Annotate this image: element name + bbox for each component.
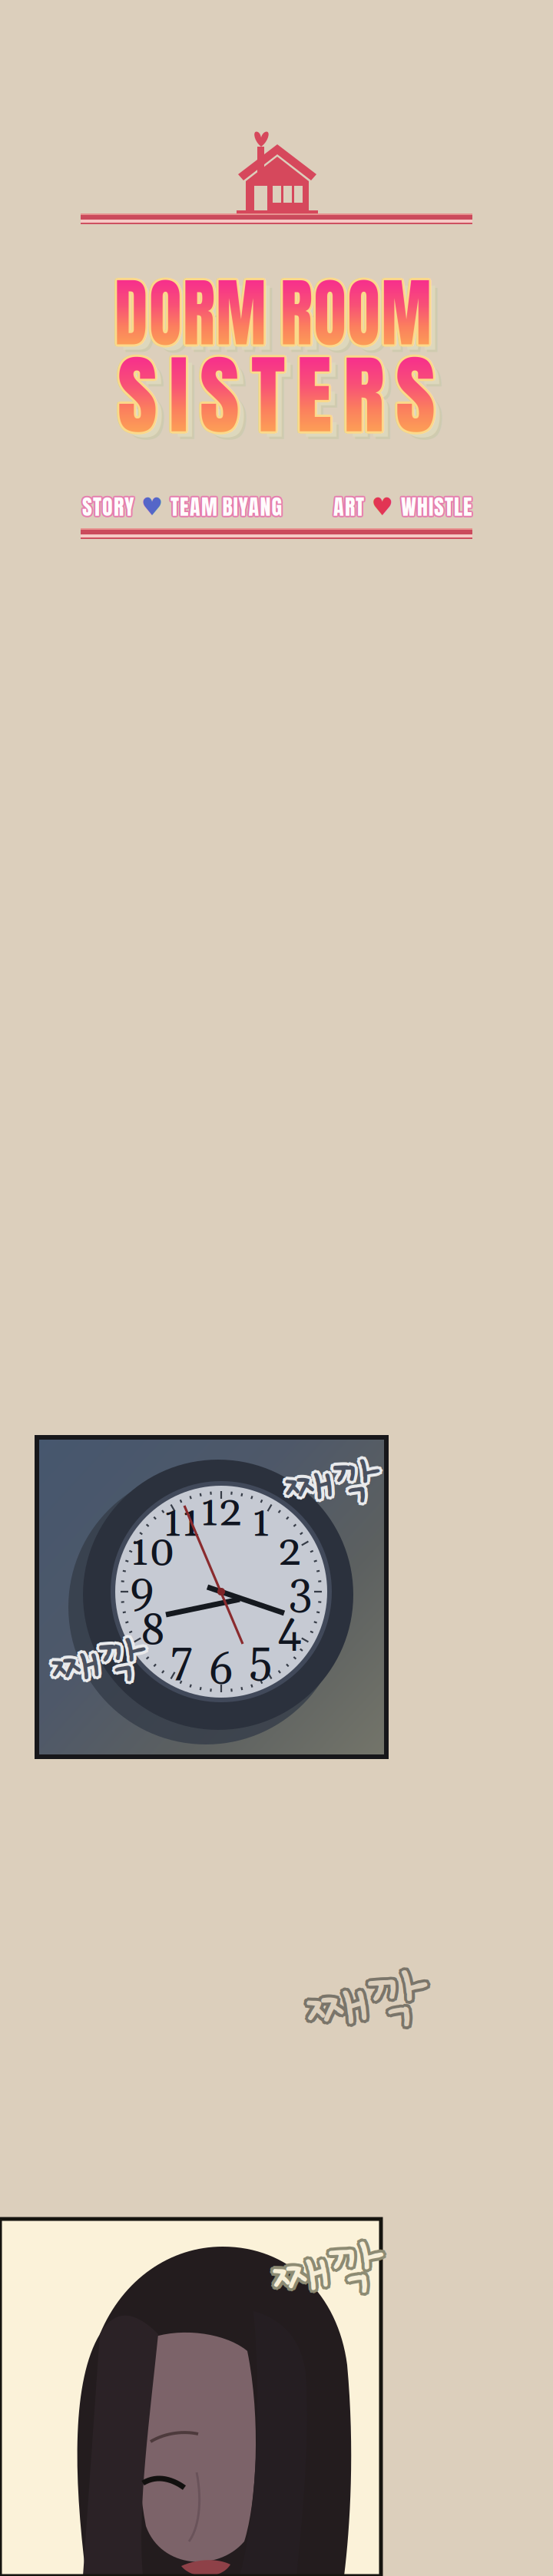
staticText: I xyxy=(234,492,239,524)
staticText: R xyxy=(345,491,355,523)
staticText: M xyxy=(230,256,286,369)
staticText: N xyxy=(261,492,272,524)
staticText: T xyxy=(253,332,287,461)
staticText: O xyxy=(372,255,408,367)
staticText: T xyxy=(446,491,455,523)
staticText: O xyxy=(379,262,416,374)
staticText: O xyxy=(103,489,114,522)
staticText: B xyxy=(222,492,232,524)
staticText: S xyxy=(198,328,238,458)
staticText: T xyxy=(251,332,285,462)
staticText: R xyxy=(193,256,228,369)
staticText: M xyxy=(202,492,219,524)
staticText: A xyxy=(247,491,258,523)
staticText: D xyxy=(113,255,150,367)
staticText: S xyxy=(435,492,445,524)
staticText: T xyxy=(354,489,363,522)
staticText: A xyxy=(247,489,258,522)
staticText: I xyxy=(171,332,190,461)
staticText: Y xyxy=(123,492,132,524)
staticText: S xyxy=(393,330,433,460)
staticText: R xyxy=(115,489,125,522)
staticText: S xyxy=(81,491,91,523)
staticText: W xyxy=(399,491,415,523)
staticText: I xyxy=(427,492,432,524)
staticText: T xyxy=(94,492,103,524)
staticText: E xyxy=(181,492,190,524)
staticText: S xyxy=(82,489,92,521)
staticText: S xyxy=(433,489,443,522)
staticText: M xyxy=(413,256,469,369)
staticText: L xyxy=(454,489,462,521)
staticText: R xyxy=(345,328,386,458)
staticText: A xyxy=(249,491,259,523)
staticText: B xyxy=(224,489,234,522)
staticText: H xyxy=(417,492,428,524)
staticText: B xyxy=(221,489,231,522)
staticText: S xyxy=(398,330,438,460)
staticText: 째깍 xyxy=(307,1973,429,2046)
staticText: I xyxy=(167,330,186,460)
staticText: O xyxy=(336,259,372,371)
staticText: L xyxy=(455,491,464,523)
staticText: T xyxy=(93,492,101,524)
staticText: A xyxy=(189,489,199,522)
staticText: R xyxy=(344,489,354,522)
staticText: A xyxy=(250,491,261,523)
staticText: T xyxy=(257,336,291,465)
staticText: S xyxy=(433,492,443,524)
staticText: R xyxy=(305,262,340,374)
staticText: H xyxy=(418,492,429,524)
staticText: R xyxy=(190,259,226,371)
staticText: E xyxy=(463,489,472,521)
staticText: G xyxy=(273,492,283,524)
staticText: I xyxy=(167,332,186,461)
staticText: O xyxy=(101,492,112,524)
staticText: N xyxy=(260,491,271,523)
staticText: I xyxy=(169,328,188,457)
staticText: O xyxy=(337,258,374,371)
staticText: R xyxy=(343,328,384,457)
staticText: S xyxy=(396,332,435,462)
staticText: T xyxy=(354,492,363,524)
staticText: O xyxy=(153,254,189,367)
staticText: S xyxy=(394,332,434,461)
staticText: A xyxy=(191,492,202,524)
staticText: 째깍 xyxy=(55,1635,148,1692)
staticText: R xyxy=(301,256,336,369)
staticText: T xyxy=(93,489,101,521)
staticText: M xyxy=(411,254,467,367)
staticText: R xyxy=(343,491,353,523)
staticText: A xyxy=(190,491,200,523)
staticText: M xyxy=(229,255,285,367)
staticText: M xyxy=(417,262,473,374)
staticText: B xyxy=(221,491,231,523)
staticText: M xyxy=(227,254,283,367)
staticText: T xyxy=(444,489,452,522)
staticText: E xyxy=(181,489,190,522)
staticText: 4 xyxy=(277,1604,302,1659)
staticText: A xyxy=(334,489,345,522)
staticText: O xyxy=(155,256,191,369)
staticText: M xyxy=(411,259,467,371)
staticText: S xyxy=(197,330,237,460)
staticText: 째깍 xyxy=(276,2238,386,2306)
staticText: S xyxy=(84,491,94,523)
staticText: 7 xyxy=(171,1633,192,1687)
staticText: D xyxy=(117,256,154,369)
staticText: I xyxy=(175,336,194,465)
staticText: L xyxy=(454,492,462,524)
staticText: S xyxy=(394,328,434,458)
staticText: R xyxy=(342,332,382,461)
staticText: 째깍 xyxy=(276,2243,386,2310)
staticText: D xyxy=(116,258,153,371)
staticText: T xyxy=(94,489,103,522)
staticText: A xyxy=(333,492,344,524)
staticText: S xyxy=(397,328,437,458)
staticText: O xyxy=(159,262,195,374)
staticText: A xyxy=(250,489,260,522)
staticText: I xyxy=(429,489,433,521)
staticText: H xyxy=(416,489,427,522)
staticText: T xyxy=(445,491,453,523)
staticText: Y xyxy=(237,491,246,523)
